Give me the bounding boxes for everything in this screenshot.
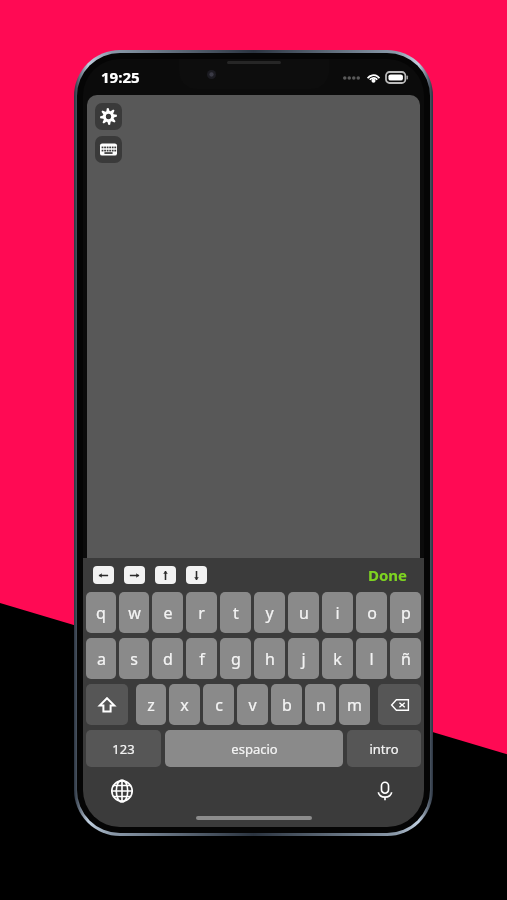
- staticText: b: [282, 694, 292, 716]
- staticText: o: [367, 602, 377, 624]
- staticText: l: [369, 648, 374, 670]
- button[interactable]: espacio: [165, 730, 343, 767]
- button[interactable]: ñ: [390, 638, 421, 679]
- button[interactable]: p: [390, 592, 421, 633]
- button[interactable]: a: [86, 638, 116, 679]
- button[interactable]: Move down: [186, 566, 207, 584]
- button[interactable]: i: [322, 592, 353, 633]
- button[interactable]: o: [356, 592, 387, 633]
- staticText: espacio: [231, 740, 278, 758]
- staticText: m: [347, 694, 362, 716]
- staticText: n: [316, 694, 326, 716]
- staticText: q: [96, 602, 106, 624]
- button[interactable]: r: [186, 592, 217, 633]
- staticText: a: [97, 648, 106, 670]
- button[interactable]: t: [220, 592, 251, 633]
- button[interactable]: f: [186, 638, 217, 679]
- staticText: intro: [369, 740, 399, 758]
- staticText: s: [130, 648, 138, 670]
- staticText: h: [265, 648, 275, 670]
- button[interactable]: Settings: [95, 103, 122, 130]
- button[interactable]: d: [152, 638, 183, 679]
- button[interactable]: l: [356, 638, 387, 679]
- staticText: ñ: [401, 648, 411, 670]
- staticText: w: [128, 602, 141, 624]
- button[interactable]: s: [119, 638, 149, 679]
- staticText: 123: [112, 740, 135, 758]
- button[interactable]: k: [322, 638, 353, 679]
- staticText: g: [231, 648, 241, 670]
- staticText: p: [401, 602, 411, 624]
- staticText: u: [299, 602, 309, 624]
- button[interactable]: c: [203, 684, 234, 725]
- button[interactable]: 123: [86, 730, 161, 767]
- button[interactable]: b: [271, 684, 302, 725]
- button[interactable]: Keyboard: [95, 136, 122, 163]
- button[interactable]: w: [119, 592, 149, 633]
- button[interactable]: Move left: [93, 566, 114, 584]
- button[interactable]: g: [220, 638, 251, 679]
- staticText: c: [215, 694, 223, 716]
- staticText: Done: [368, 565, 408, 585]
- button[interactable]: v: [237, 684, 268, 725]
- button[interactable]: q: [86, 592, 116, 633]
- button[interactable]: Move up: [155, 566, 176, 584]
- button[interactable]: u: [288, 592, 319, 633]
- button[interactable]: Shift: [86, 684, 128, 725]
- button[interactable]: Change language: [107, 776, 137, 806]
- staticText: t: [233, 602, 239, 624]
- button[interactable]: Done: [362, 562, 414, 588]
- button[interactable]: e: [152, 592, 183, 633]
- button[interactable]: y: [254, 592, 285, 633]
- button[interactable]: z: [136, 684, 166, 725]
- staticText: z: [147, 694, 155, 716]
- staticText: e: [163, 602, 173, 624]
- button[interactable]: x: [169, 684, 200, 725]
- staticText: f: [199, 648, 205, 670]
- staticText: k: [333, 648, 342, 670]
- button[interactable]: Voice input: [370, 776, 400, 806]
- button[interactable]: n: [305, 684, 336, 725]
- staticText: r: [198, 602, 205, 624]
- staticText: j: [301, 648, 306, 670]
- staticText: x: [180, 694, 189, 716]
- button[interactable]: m: [339, 684, 370, 725]
- staticText: 19:25: [101, 67, 140, 87]
- staticText: i: [335, 602, 340, 624]
- staticText: y: [265, 602, 274, 624]
- button[interactable]: h: [254, 638, 285, 679]
- staticText: d: [163, 648, 173, 670]
- button[interactable]: Backspace: [378, 684, 421, 725]
- button[interactable]: Move right: [124, 566, 145, 584]
- button[interactable]: intro: [347, 730, 421, 767]
- staticText: v: [248, 694, 257, 716]
- button[interactable]: j: [288, 638, 319, 679]
